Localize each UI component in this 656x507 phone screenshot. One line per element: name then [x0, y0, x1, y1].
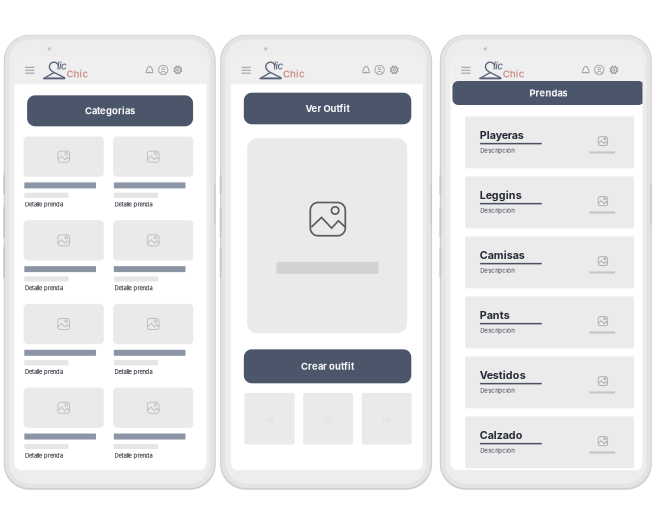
staticText: Chic	[503, 68, 525, 80]
button[interactable]: Vestidos	[465, 356, 634, 408]
button[interactable]: Detalle prenda	[113, 304, 193, 378]
button[interactable]: Ver Outfit	[244, 93, 411, 124]
staticText: Playeras	[480, 129, 524, 142]
button[interactable]: Detalle prenda	[113, 388, 193, 462]
staticText: Pants	[480, 309, 510, 322]
staticText: Categorias	[85, 105, 135, 116]
staticText: Detalle prenda	[115, 368, 153, 375]
button[interactable]: Detalle prenda	[24, 388, 104, 462]
staticText: lic	[57, 60, 67, 72]
button[interactable]: Calzado	[465, 416, 634, 468]
staticText: Crear outfit	[301, 361, 354, 372]
button[interactable]: Detalle prenda	[24, 220, 104, 294]
button[interactable]: Menu	[238, 62, 254, 78]
staticText: Detalle prenda	[25, 201, 63, 208]
button[interactable]: Prendas	[452, 81, 644, 105]
button[interactable]: Categorias	[27, 95, 193, 126]
staticText: Descripción	[480, 207, 515, 214]
staticText: lic	[273, 60, 283, 72]
button[interactable]: Menu	[458, 62, 474, 78]
button[interactable]: Profile	[595, 65, 604, 74]
staticText: lic	[493, 60, 503, 72]
staticText: Descripción	[480, 267, 515, 274]
button[interactable]: Detalle prenda	[113, 136, 193, 210]
staticText: Chic	[67, 68, 89, 80]
staticText: Detalle prenda	[25, 285, 63, 292]
staticText: Descripción	[480, 447, 515, 454]
staticText: Chic	[283, 68, 305, 80]
staticText: Ver Outfit	[306, 103, 350, 114]
staticText: Prendas	[529, 87, 567, 99]
button[interactable]: Notifications	[581, 65, 590, 74]
button[interactable]: Menu	[22, 62, 38, 78]
button[interactable]: Profile	[159, 65, 168, 74]
button[interactable]: Crear outfit	[244, 349, 411, 383]
button[interactable]: Detalle prenda	[24, 304, 104, 378]
staticText: Calzado	[480, 429, 523, 442]
button[interactable]: Settings	[173, 65, 182, 75]
button[interactable]: Settings	[609, 65, 619, 75]
button[interactable]: Pants	[465, 296, 634, 348]
staticText: Descripción	[480, 147, 515, 154]
staticText: Camisas	[480, 249, 525, 262]
staticText: Leggins	[480, 189, 522, 202]
button[interactable]: Notifications	[145, 65, 154, 74]
button[interactable]: Camisas	[465, 236, 634, 288]
staticText: Detalle prenda	[25, 368, 63, 375]
button[interactable]: Profile	[375, 65, 384, 74]
staticText: Descripción	[480, 327, 515, 334]
button[interactable]: Detalle prenda	[113, 220, 193, 294]
button[interactable]: Notifications	[362, 65, 370, 74]
button[interactable]: Leggins	[465, 176, 634, 228]
staticText: Descripción	[480, 387, 515, 394]
staticText: Detalle prenda	[25, 452, 63, 459]
button[interactable]: Playeras	[465, 116, 634, 168]
staticText: Detalle prenda	[115, 452, 153, 459]
button[interactable]: Settings	[389, 65, 399, 75]
staticText: Vestidos	[480, 369, 526, 382]
button[interactable]: Detalle prenda	[24, 136, 104, 210]
staticText: Detalle prenda	[115, 285, 153, 292]
staticText: Detalle prenda	[115, 201, 153, 208]
